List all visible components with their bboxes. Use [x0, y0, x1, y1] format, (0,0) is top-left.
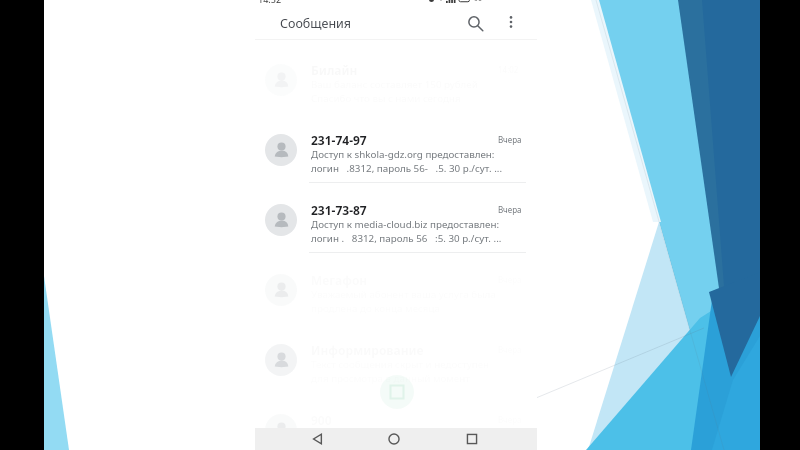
staticText: логин . 8312, пароль 56 :5. 30 р./сут. .…: [311, 232, 527, 245]
button[interactable]: More options: [499, 10, 523, 34]
staticText: Вчера: [498, 204, 522, 215]
staticText: 231-74-97: [311, 132, 367, 148]
staticText: Доступ к shkola-gdz.org предоставлен:: [311, 148, 527, 161]
button[interactable]: Информирование: [255, 329, 537, 399]
button[interactable]: 231-73-87: [255, 189, 537, 259]
button[interactable]: Recent apps: [459, 428, 485, 450]
staticText: Сообщение от банка недоступно: [311, 428, 527, 441]
staticText: для просмотра в данный момент: [311, 372, 527, 385]
button[interactable]: 231-74-97: [255, 119, 537, 189]
staticText: 14:52: [258, 0, 282, 5]
staticText: Вчера: [498, 134, 522, 145]
button[interactable]: Home: [381, 428, 407, 450]
button[interactable]: Search: [462, 10, 489, 37]
staticText: Сообщения: [280, 15, 352, 32]
button[interactable]: Compose new message: [380, 375, 414, 409]
staticText: 231-73-87: [311, 202, 367, 218]
staticText: 90: [474, 0, 483, 4]
staticText: [311, 442, 527, 450]
button[interactable]: Back: [305, 428, 331, 450]
staticText: логин .8312, пароль 56- .5. 30 р./сут. .…: [311, 162, 527, 175]
button[interactable]: 900: [255, 399, 537, 450]
staticText: Доступ к media-cloud.biz предоставлен:: [311, 218, 527, 231]
